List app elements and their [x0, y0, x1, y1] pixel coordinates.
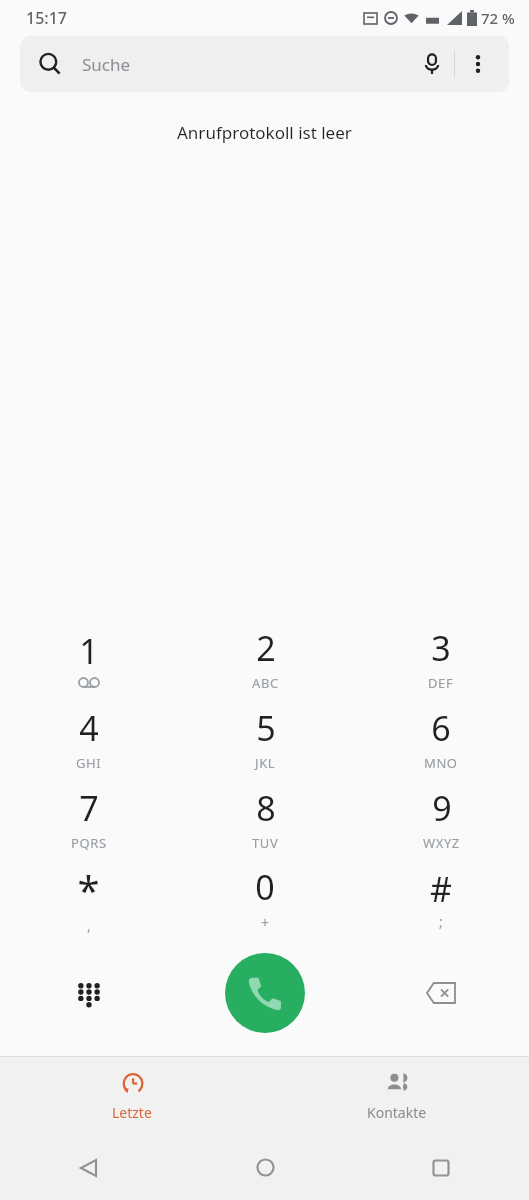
staticText: 2 — [256, 625, 276, 671]
staticText: 72 % — [481, 8, 515, 28]
staticText: Letzte — [112, 1103, 152, 1122]
button[interactable]: Weitere Optionen — [455, 41, 501, 87]
button[interactable]: 2 — [177, 618, 353, 698]
staticText: Suche — [82, 53, 131, 76]
staticText: ABC — [252, 674, 279, 692]
staticText: MNO — [424, 754, 458, 772]
staticText: 4 — [79, 705, 99, 751]
staticText: 7 — [79, 785, 99, 831]
staticText: TUV — [252, 834, 279, 852]
button[interactable]: Übersicht — [353, 1135, 529, 1200]
staticText: + — [261, 913, 270, 932]
button[interactable]: Startbildschirm — [177, 1135, 353, 1200]
staticText: 0 — [255, 864, 275, 910]
button[interactable]: # — [353, 858, 529, 938]
button[interactable]: 0 — [177, 858, 353, 938]
button[interactable]: Zurück — [0, 1135, 177, 1200]
button[interactable]: 4 — [0, 698, 177, 778]
button[interactable]: 3 — [353, 618, 529, 698]
button[interactable]: Suche — [20, 36, 509, 92]
staticText: , — [87, 916, 91, 935]
staticText: 6 — [431, 705, 451, 751]
staticText: ; — [439, 912, 443, 931]
button[interactable]: 6 — [353, 698, 529, 778]
staticText: JKL — [255, 754, 276, 772]
button[interactable]: 7 — [0, 778, 177, 858]
button[interactable]: Löschen — [353, 948, 529, 1038]
button[interactable]: 9 — [353, 778, 529, 858]
staticText: 15:17 — [26, 7, 67, 29]
staticText: 9 — [432, 785, 452, 831]
staticText: Kontakte — [367, 1103, 427, 1122]
button[interactable]: * — [0, 858, 177, 938]
staticText: PQRS — [71, 834, 107, 852]
staticText: 3 — [431, 625, 451, 671]
button[interactable]: Kontakte — [264, 1057, 529, 1135]
button[interactable]: Anrufen — [225, 953, 305, 1033]
staticText: Anrufprotokoll ist leer — [177, 121, 352, 144]
staticText: GHI — [76, 754, 102, 772]
staticText: 8 — [256, 785, 276, 831]
staticText: # — [430, 866, 452, 912]
button[interactable]: Sprachsuche — [410, 42, 454, 86]
button[interactable]: 1 — [0, 618, 177, 698]
staticText: * — [77, 862, 100, 916]
staticText: DEF — [428, 674, 454, 692]
button[interactable]: Letzte — [0, 1057, 264, 1135]
staticText: 1 — [79, 628, 99, 674]
button[interactable]: 8 — [177, 778, 353, 858]
staticText: 5 — [256, 705, 276, 751]
staticText: WXYZ — [423, 834, 460, 852]
button[interactable]: Tastenfeld — [0, 948, 177, 1038]
button[interactable]: 5 — [177, 698, 353, 778]
